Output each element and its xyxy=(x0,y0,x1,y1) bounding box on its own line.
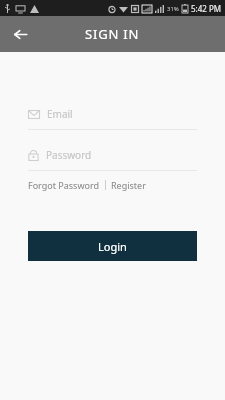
button[interactable]: Register xyxy=(111,179,146,191)
staticText: Password xyxy=(46,148,92,162)
staticText: 31% xyxy=(167,5,179,13)
staticText: Email xyxy=(47,107,73,121)
staticText: 5:42 PM xyxy=(191,3,222,14)
button[interactable]: Password xyxy=(28,145,197,171)
button[interactable]: Login xyxy=(28,231,197,261)
staticText: SIGN IN xyxy=(85,25,140,43)
button[interactable]: Email xyxy=(28,104,197,130)
button[interactable]: Back xyxy=(6,20,34,48)
staticText: Login xyxy=(98,239,127,254)
button[interactable]: Forgot Password xyxy=(28,179,100,191)
